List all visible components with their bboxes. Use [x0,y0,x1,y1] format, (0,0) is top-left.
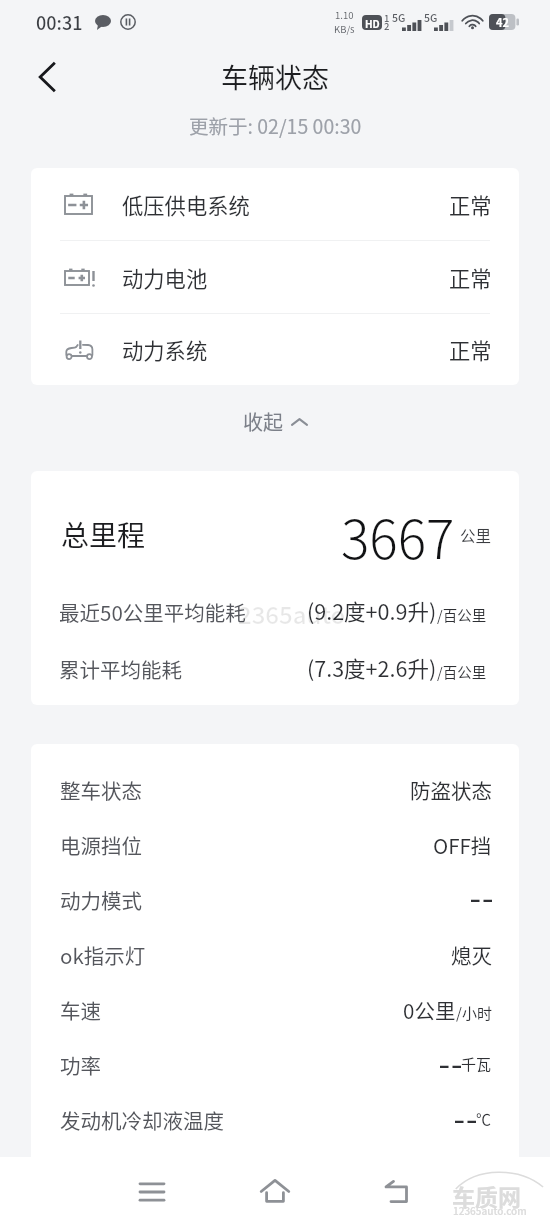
staticText: (9.2度+0.9升) [307,595,437,626]
staticText: 3667 [341,498,455,575]
staticText: 动力系统 [122,334,208,365]
staticText: 42 [496,14,509,30]
staticText: 2 [384,19,390,33]
staticText: OFF挡 [433,830,492,860]
button[interactable]: 动力电池 [31,241,519,313]
button[interactable]: 整车状态 [60,762,492,817]
button[interactable]: Recent apps [124,1163,180,1219]
staticText: 0公里 [403,995,456,1025]
staticText: 动力模式 [60,885,142,915]
staticText: 5G [424,10,438,25]
staticText: 低压供电系统 [122,189,250,220]
staticText: 00:31 [36,9,83,35]
staticText: 正常 [449,262,492,293]
staticText: KB/s [334,22,355,36]
staticText: 车速 [60,995,101,1025]
staticText: 整车状态 [60,775,142,805]
staticText: 12365auto.com [453,1203,527,1217]
staticText: 公里 [460,524,492,546]
staticText: 正常 [449,189,492,220]
staticText: 千瓦 [461,1053,492,1075]
button[interactable]: 低压供电系统 [31,168,519,240]
staticText: 2365auto [238,596,346,631]
staticText: 车质网 [452,1179,521,1212]
button[interactable]: 动力模式 [60,872,492,927]
staticText: 电源挡位 [60,830,142,860]
button[interactable]: 电源挡位 [60,817,492,872]
staticText: 收起 [243,407,283,436]
staticText: 最近50公里平均能耗 [59,597,246,627]
button[interactable]: Back [22,52,72,102]
staticText: 5G [392,10,406,25]
button[interactable]: 功率 [60,1037,492,1092]
staticText: /百公里 [437,604,487,625]
staticText: HD [365,16,380,30]
staticText: /百公里 [437,661,487,682]
staticText: (7.3度+2.6升) [307,652,437,683]
staticText: 动力电池 [122,262,208,293]
button[interactable]: 收起 [227,397,323,446]
staticText: 车辆状态 [221,57,329,96]
button[interactable]: Back [369,1163,425,1219]
staticText: 功率 [60,1050,101,1080]
button[interactable]: ok指示灯 [60,927,492,982]
staticText: 防盗状态 [410,775,492,805]
staticText: 总里程 [61,514,146,555]
staticText: ok指示灯 [60,940,146,970]
staticText: 熄灭 [451,940,492,970]
staticText: ℃ [476,1108,492,1130]
staticText: /小时 [456,1002,492,1024]
button[interactable]: Home [247,1163,303,1219]
staticText: 更新于: 02/15 00:30 [189,111,362,139]
staticText: 1 [384,11,390,25]
button[interactable]: 动力系统 [31,314,519,385]
staticText: 正常 [449,334,492,365]
staticText: 1.10 [335,8,354,22]
button[interactable]: 发动机冷却液温度 [60,1092,492,1147]
staticText: 累计平均能耗 [59,654,182,684]
staticText: 发动机冷却液温度 [60,1105,224,1135]
button[interactable]: 车速 [60,982,492,1037]
